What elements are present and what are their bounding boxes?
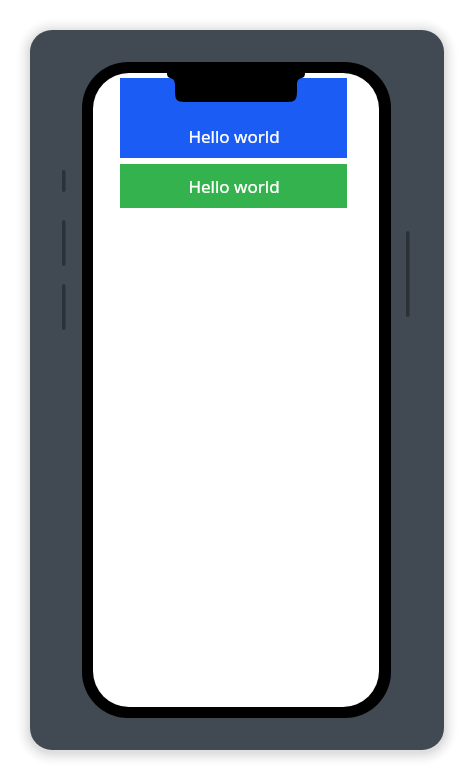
- staticText: Hello world: [188, 125, 280, 148]
- staticText: Hello world: [188, 175, 280, 198]
- button[interactable]: Hello world: [120, 78, 347, 158]
- button[interactable]: Hello world: [120, 164, 347, 208]
